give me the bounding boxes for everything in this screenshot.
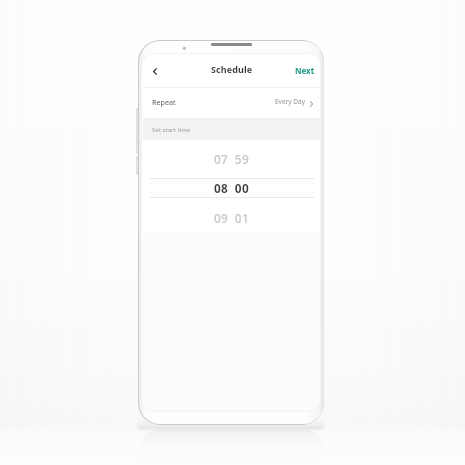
staticText: Repeat [152,97,176,107]
button[interactable]: 08 00 [143,178,320,198]
button[interactable]: Next [288,62,320,79]
staticText: 07 59 [214,151,249,167]
staticText: 08 00 [214,180,249,196]
button[interactable]: 07 59 [143,149,320,169]
staticText: Schedule [211,63,253,75]
staticText: Every Day [275,97,305,106]
button[interactable]: Repeat [143,86,320,117]
staticText: Next [295,65,315,76]
staticText: 09 01 [214,210,249,226]
staticText: Set start time [152,125,191,133]
button[interactable]: 09 01 [143,208,320,228]
button[interactable]: Back [146,63,163,80]
